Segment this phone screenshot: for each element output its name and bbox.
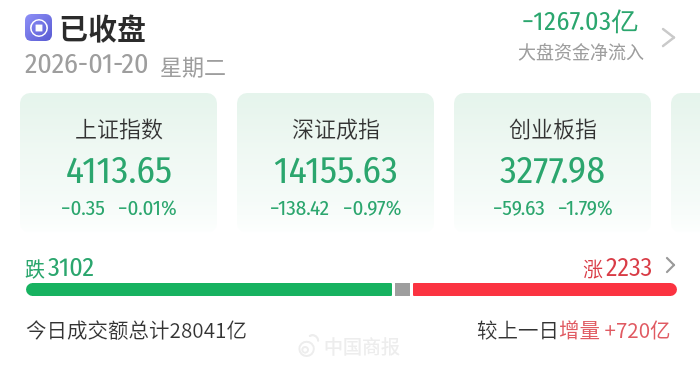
staticText: −0.97%	[343, 195, 402, 220]
staticText: 深证成指	[292, 111, 381, 143]
staticText: 涨	[583, 254, 603, 283]
staticText: 已收盘	[59, 6, 147, 48]
staticText: 3102	[48, 252, 94, 283]
button[interactable]: More market breadth	[657, 252, 683, 278]
staticText: 较上一日	[477, 314, 559, 344]
staticText: 创业板指	[509, 111, 598, 143]
staticText: 增量 +720亿	[559, 314, 671, 344]
staticText: 中国商报	[324, 332, 401, 360]
staticText: 星期二	[160, 49, 227, 81]
staticText: 3277.98	[500, 148, 606, 192]
staticText: 4113.65	[66, 148, 173, 192]
button[interactable]: 上证指数	[20, 93, 217, 233]
button[interactable]: More capital flow	[653, 22, 683, 52]
button[interactable]	[671, 93, 700, 233]
button[interactable]: 创业板指	[454, 93, 651, 233]
staticText: −138.42	[270, 195, 330, 220]
staticText: −1267.03亿	[522, 5, 639, 38]
staticText: −0.35	[61, 195, 105, 220]
button[interactable]: 涨	[583, 252, 653, 283]
staticText: 今日成交额总计28041亿	[26, 314, 247, 344]
button[interactable]: 已收盘	[25, 6, 147, 48]
staticText: −59.63	[493, 195, 545, 220]
button[interactable]: 跌	[25, 252, 94, 283]
staticText: 大盘资金净流入	[518, 38, 644, 64]
staticText: 上证指数	[75, 111, 164, 143]
staticText: 14155.63	[274, 148, 398, 192]
staticText: −0.01%	[118, 195, 177, 220]
staticText: 跌	[25, 254, 45, 283]
staticText: 2026-01-20	[25, 47, 149, 81]
staticText: 2233	[606, 252, 653, 283]
staticText: −1.79%	[558, 195, 613, 220]
button[interactable]: 深证成指	[237, 93, 434, 233]
